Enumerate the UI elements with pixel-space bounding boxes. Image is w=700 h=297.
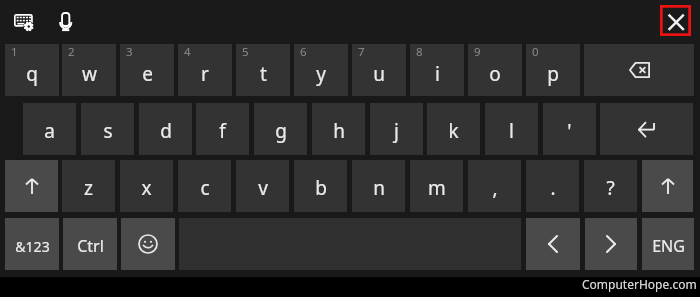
- staticText: v: [258, 175, 268, 201]
- button[interactable]: Backspace: [584, 44, 694, 96]
- button[interactable]: ': [543, 103, 596, 155]
- button[interactable]: .: [526, 160, 579, 212]
- button[interactable]: 6: [294, 44, 348, 96]
- button[interactable]: g: [254, 103, 307, 155]
- staticText: e: [142, 61, 153, 87]
- staticText: 7: [358, 44, 365, 60]
- button[interactable]: Shift: [642, 160, 693, 212]
- staticText: t: [260, 61, 267, 87]
- staticText: c: [200, 175, 210, 201]
- staticText: r: [201, 61, 209, 87]
- button[interactable]: k: [427, 103, 480, 155]
- staticText: a: [44, 118, 55, 144]
- staticText: 1: [11, 44, 18, 60]
- staticText: g: [275, 118, 287, 144]
- button[interactable]: Ctrl: [63, 218, 117, 270]
- button[interactable]: n: [352, 160, 405, 212]
- button[interactable]: h: [312, 103, 365, 155]
- button[interactable]: Voice input: [50, 5, 82, 37]
- button[interactable]: c: [178, 160, 231, 212]
- button[interactable]: Keyboard settings: [8, 5, 40, 37]
- staticText: j: [394, 118, 399, 144]
- staticText: z: [84, 175, 93, 201]
- button[interactable]: ,: [468, 160, 521, 212]
- button[interactable]: Enter: [600, 103, 693, 155]
- staticText: 4: [184, 44, 191, 60]
- staticText: 0: [532, 44, 539, 60]
- button[interactable]: 3: [120, 44, 174, 96]
- button[interactable]: 2: [62, 44, 116, 96]
- button[interactable]: l: [485, 103, 538, 155]
- button[interactable]: z: [62, 160, 115, 212]
- button[interactable]: j: [370, 103, 423, 155]
- button[interactable]: f: [196, 103, 249, 155]
- staticText: q: [26, 61, 38, 87]
- staticText: 6: [300, 44, 307, 60]
- staticText: s: [103, 118, 113, 144]
- staticText: x: [141, 175, 152, 201]
- button[interactable]: 5: [236, 44, 290, 96]
- staticText: ': [567, 118, 572, 144]
- staticText: f: [219, 118, 226, 144]
- staticText: d: [160, 118, 172, 144]
- staticText: i: [435, 61, 440, 87]
- staticText: y: [316, 61, 326, 87]
- button[interactable]: 7: [352, 44, 406, 96]
- button[interactable]: 9: [468, 44, 522, 96]
- staticText: ?: [606, 175, 615, 201]
- staticText: w: [82, 61, 97, 87]
- staticText: o: [489, 61, 501, 87]
- staticText: Ctrl: [77, 235, 104, 257]
- staticText: p: [547, 61, 559, 87]
- button[interactable]: x: [120, 160, 173, 212]
- staticText: &123: [15, 237, 50, 256]
- staticText: .: [550, 175, 556, 201]
- staticText: 2: [68, 44, 75, 60]
- button[interactable]: 8: [410, 44, 464, 96]
- staticText: ,: [492, 175, 498, 201]
- button[interactable]: b: [294, 160, 347, 212]
- staticText: h: [333, 118, 345, 144]
- button[interactable]: Cursor right: [585, 218, 637, 270]
- staticText: ComputerHope.com: [582, 276, 697, 292]
- button[interactable]: v: [236, 160, 289, 212]
- button[interactable]: Cursor left: [526, 218, 580, 270]
- staticText: n: [373, 175, 385, 201]
- staticText: 5: [242, 44, 249, 60]
- button[interactable]: d: [139, 103, 192, 155]
- button[interactable]: ?: [584, 160, 637, 212]
- staticText: u: [373, 61, 385, 87]
- button[interactable]: 0: [526, 44, 580, 96]
- button[interactable]: s: [81, 103, 134, 155]
- button[interactable]: a: [23, 103, 76, 155]
- button[interactable]: &123: [5, 218, 59, 270]
- staticText: 8: [416, 44, 423, 60]
- button[interactable]: Emoji: [121, 218, 175, 270]
- button[interactable]: ENG: [642, 218, 694, 270]
- button[interactable]: Close keyboard: [660, 5, 691, 36]
- staticText: l: [509, 118, 514, 144]
- button[interactable]: 4: [178, 44, 232, 96]
- staticText: ENG: [652, 235, 685, 257]
- staticText: k: [448, 118, 459, 144]
- staticText: 3: [126, 44, 133, 60]
- staticText: m: [428, 175, 446, 201]
- button[interactable]: Shift: [5, 160, 58, 212]
- button[interactable]: 1: [5, 44, 59, 96]
- staticText: b: [315, 175, 327, 201]
- staticText: 9: [474, 44, 481, 60]
- button[interactable]: m: [410, 160, 463, 212]
